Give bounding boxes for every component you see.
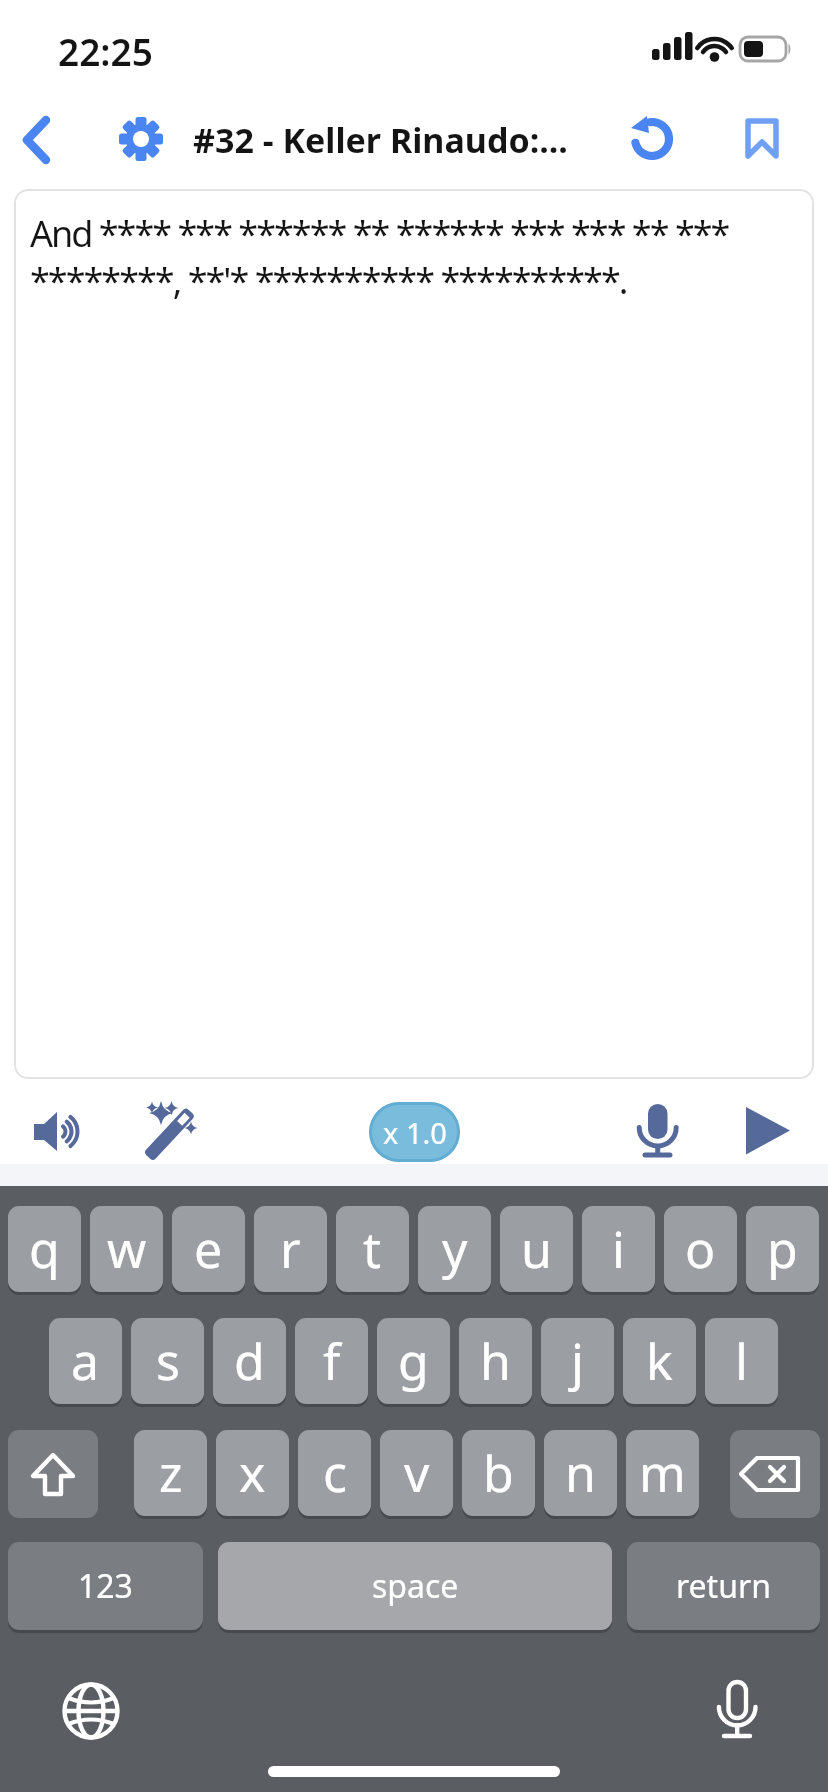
button[interactable] <box>626 110 678 168</box>
button[interactable] <box>114 112 168 166</box>
button[interactable]: v <box>380 1430 453 1516</box>
button[interactable] <box>60 1680 122 1742</box>
staticText: t <box>363 1215 382 1283</box>
button[interactable]: h <box>459 1318 532 1404</box>
staticText: a <box>71 1327 100 1395</box>
staticText: j <box>571 1327 584 1395</box>
staticText: w <box>107 1215 147 1283</box>
staticText: i <box>612 1215 625 1283</box>
staticText: ********, **'* ********** **********. <box>30 256 627 305</box>
button[interactable]: a <box>49 1318 122 1404</box>
staticText: p <box>767 1215 798 1283</box>
button[interactable] <box>730 1430 820 1518</box>
staticText: space <box>372 1564 459 1608</box>
staticText: o <box>685 1215 716 1283</box>
button[interactable]: return <box>627 1542 820 1630</box>
button[interactable]: s <box>131 1318 204 1404</box>
button[interactable]: space <box>218 1542 612 1630</box>
button[interactable]: c <box>298 1430 371 1516</box>
button[interactable] <box>740 1100 796 1160</box>
staticText: d <box>234 1327 265 1395</box>
staticText: 22:25 <box>58 26 153 76</box>
button[interactable]: f <box>295 1318 368 1404</box>
button[interactable]: o <box>664 1206 737 1292</box>
button[interactable]: l <box>705 1318 778 1404</box>
staticText: x 1.0 <box>383 1113 447 1152</box>
staticText: And **** *** ****** ** ****** *** *** **… <box>30 209 729 258</box>
button[interactable] <box>710 1676 766 1742</box>
button[interactable]: j <box>541 1318 614 1404</box>
staticText: c <box>323 1439 347 1507</box>
button[interactable]: u <box>500 1206 573 1292</box>
staticText: s <box>156 1327 180 1395</box>
button[interactable]: w <box>90 1206 163 1292</box>
button[interactable]: y <box>418 1206 491 1292</box>
staticText: y <box>442 1215 468 1283</box>
button[interactable]: r <box>254 1206 327 1292</box>
button[interactable]: i <box>582 1206 655 1292</box>
staticText: b <box>483 1439 514 1507</box>
button[interactable] <box>630 1096 686 1162</box>
button[interactable]: x <box>216 1430 289 1516</box>
button[interactable]: p <box>746 1206 819 1292</box>
staticText: n <box>565 1439 596 1507</box>
button[interactable]: g <box>377 1318 450 1404</box>
staticText: k <box>646 1327 673 1395</box>
button[interactable]: q <box>8 1206 81 1292</box>
button[interactable]: e <box>172 1206 245 1292</box>
staticText: h <box>480 1327 511 1395</box>
button[interactable] <box>24 1098 92 1164</box>
button[interactable]: k <box>623 1318 696 1404</box>
staticText: l <box>735 1327 748 1395</box>
button[interactable]: t <box>336 1206 409 1292</box>
staticText: u <box>521 1215 552 1283</box>
staticText: x <box>239 1439 266 1507</box>
button[interactable]: x 1.0 <box>369 1102 460 1162</box>
button[interactable] <box>12 108 64 172</box>
button[interactable]: z <box>134 1430 207 1516</box>
staticText: q <box>29 1215 60 1283</box>
button[interactable] <box>8 1430 98 1518</box>
staticText: g <box>398 1327 429 1395</box>
button[interactable]: d <box>213 1318 286 1404</box>
staticText: f <box>323 1327 341 1395</box>
staticText: e <box>194 1215 223 1283</box>
staticText: return <box>676 1564 771 1608</box>
button[interactable]: m <box>626 1430 699 1516</box>
button[interactable]: 123 <box>8 1542 203 1630</box>
staticText: v <box>404 1439 430 1507</box>
button[interactable] <box>740 112 784 164</box>
staticText: m <box>639 1439 686 1507</box>
button[interactable]: n <box>544 1430 617 1516</box>
button[interactable] <box>138 1094 202 1164</box>
staticText: r <box>280 1215 301 1283</box>
staticText: z <box>159 1439 183 1507</box>
staticText: #32 - Keller Rinaudo:... <box>193 117 568 163</box>
button[interactable]: b <box>462 1430 535 1516</box>
staticText: 123 <box>78 1564 133 1608</box>
